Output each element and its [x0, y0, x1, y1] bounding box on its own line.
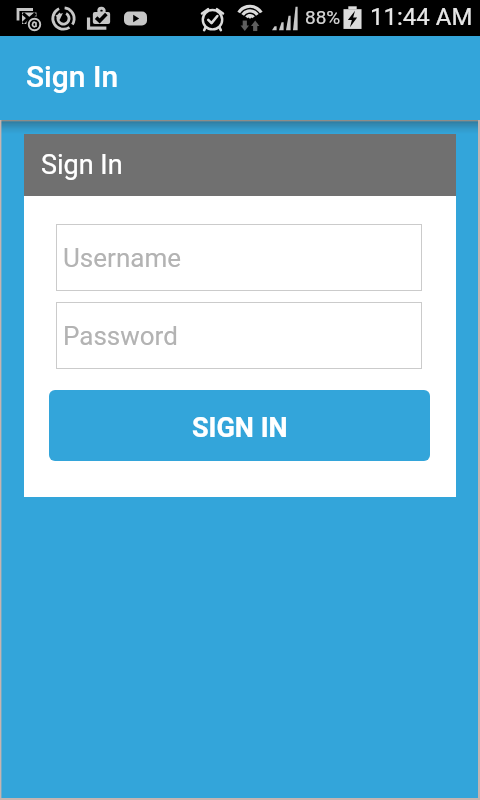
button[interactable]: Username: [56, 224, 422, 291]
staticText: SIGN IN: [192, 412, 288, 444]
staticText: Password: [63, 321, 178, 351]
button[interactable]: SIGN IN: [49, 390, 430, 461]
staticText: Sign In: [26, 59, 119, 94]
staticText: Username: [63, 243, 181, 273]
staticText: Sign In: [41, 149, 123, 181]
staticText: 88%: [305, 6, 341, 28]
staticText: 11:44 AM: [370, 3, 473, 31]
button[interactable]: Password: [56, 302, 422, 369]
